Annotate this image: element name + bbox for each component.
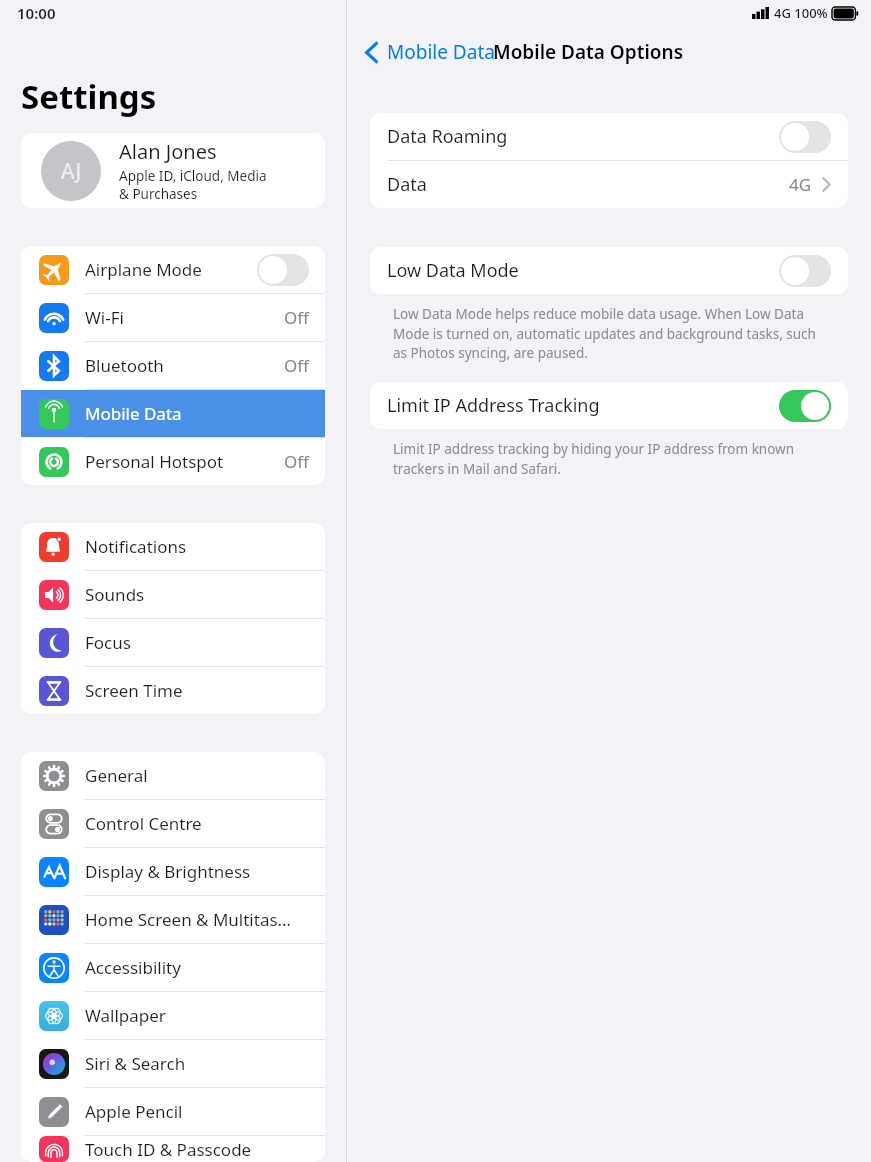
button[interactable]: Wallpaper <box>21 992 325 1039</box>
button[interactable]: Data <box>370 161 848 208</box>
staticText: Mobile Data <box>85 402 182 425</box>
staticText: Wi-Fi <box>85 306 124 329</box>
staticText: Off <box>284 354 309 377</box>
staticText: Display & Brightness <box>85 860 251 883</box>
staticText: Alan Jones <box>119 138 217 165</box>
button[interactable]: Airplane Mode <box>21 246 325 293</box>
staticText: Mobile Data <box>387 39 495 65</box>
staticText: AJ <box>61 157 82 186</box>
staticText: Apple Pencil <box>85 1100 183 1123</box>
staticText: Personal Hotspot <box>85 450 224 473</box>
button[interactable]: Limit IP Address Tracking <box>370 382 848 429</box>
staticText: Accessibility <box>85 956 181 979</box>
button[interactable]: Off <box>779 255 831 287</box>
button[interactable]: Mobile Data <box>21 390 325 437</box>
button[interactable]: Notifications <box>21 523 325 570</box>
button[interactable]: Touch ID & Passcode <box>21 1136 325 1162</box>
staticText: Bluetooth <box>85 354 164 377</box>
staticText: Settings <box>21 74 157 119</box>
staticText: Airplane Mode <box>85 258 202 281</box>
staticText: Mobile Data Options <box>493 39 684 65</box>
button[interactable]: Accessibility <box>21 944 325 991</box>
staticText: Data Roaming <box>387 124 508 149</box>
button[interactable]: Display & Brightness <box>21 848 325 895</box>
button[interactable]: Off <box>779 121 831 153</box>
staticText: Screen Time <box>85 679 183 702</box>
button[interactable]: On <box>779 390 831 422</box>
button[interactable]: Bluetooth <box>21 342 325 389</box>
staticText: 10:00 <box>17 3 56 23</box>
button[interactable]: AJ <box>21 133 325 208</box>
button[interactable]: Control Centre <box>21 800 325 847</box>
staticText: Sounds <box>85 583 145 606</box>
button[interactable]: Wi-Fi <box>21 294 325 341</box>
staticText: Siri & Search <box>85 1052 186 1075</box>
staticText: Notifications <box>85 535 187 558</box>
staticText: Focus <box>85 631 131 654</box>
staticText: Touch ID & Passcode <box>85 1138 252 1161</box>
staticText: Data <box>387 172 427 197</box>
button[interactable]: Home Screen & Multitas… <box>21 896 325 943</box>
staticText: Off <box>284 306 309 329</box>
button[interactable]: Low Data Mode <box>370 247 848 294</box>
staticText: 4G 100% <box>774 4 828 22</box>
staticText: Low Data Mode helps reduce mobile data u… <box>393 305 831 362</box>
button[interactable]: Personal Hotspot <box>21 438 325 485</box>
staticText: Control Centre <box>85 812 202 835</box>
button[interactable]: Siri & Search <box>21 1040 325 1087</box>
button[interactable]: Screen Time <box>21 667 325 714</box>
button[interactable]: General <box>21 752 325 799</box>
staticText: Apple ID, iCloud, Media <box>119 167 267 185</box>
staticText: Off <box>284 450 309 473</box>
button[interactable]: Sounds <box>21 571 325 618</box>
button[interactable]: Data Roaming <box>370 113 848 160</box>
button[interactable]: Focus <box>21 619 325 666</box>
staticText: & Purchases <box>119 185 198 203</box>
staticText: 4G <box>789 173 812 196</box>
button[interactable]: Off <box>257 254 309 286</box>
staticText: Home Screen & Multitas… <box>85 908 292 931</box>
button[interactable]: Apple Pencil <box>21 1088 325 1135</box>
staticText: General <box>85 764 148 787</box>
staticText: Low Data Mode <box>387 258 519 283</box>
staticText: Wallpaper <box>85 1004 166 1027</box>
staticText: Limit IP Address Tracking <box>387 393 600 418</box>
button[interactable]: Mobile Data <box>361 33 499 71</box>
staticText: Limit IP address tracking by hiding your… <box>393 440 831 478</box>
